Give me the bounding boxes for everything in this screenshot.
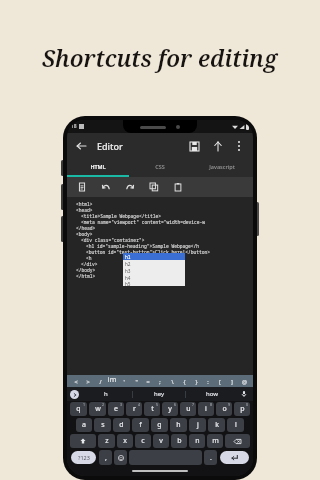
staticText: l [235, 420, 237, 430]
staticText: v [159, 436, 163, 446]
staticText: Shortcuts for editing [42, 42, 278, 73]
button[interactable]: > [82, 375, 94, 387]
button[interactable]: Javascript [191, 158, 253, 175]
button[interactable]: Expand [70, 390, 79, 399]
button[interactable]: < [70, 375, 82, 387]
button[interactable]: q [70, 402, 87, 416]
staticText: <button id="test-button">Click here!</bu… [86, 249, 211, 255]
button[interactable]: ?123 [71, 451, 96, 464]
staticText: <div class="container"> [81, 237, 145, 243]
button[interactable]: hey [133, 387, 185, 401]
staticText: h3 [125, 268, 131, 274]
button[interactable]: ; [154, 375, 166, 387]
staticText: s [101, 420, 105, 430]
button[interactable]: = [142, 375, 154, 387]
button[interactable]: h3 [123, 267, 185, 274]
button[interactable]: { [178, 375, 190, 387]
staticText: </body> [76, 267, 96, 273]
staticText: g [157, 420, 162, 430]
button[interactable]: Shift [70, 434, 96, 448]
staticText: q [76, 404, 81, 414]
button[interactable]: Undo [99, 180, 113, 194]
button[interactable]: h4 [123, 274, 185, 281]
button[interactable]: e [108, 402, 124, 416]
staticText: [ [219, 378, 221, 385]
button[interactable]: Voice input [238, 388, 250, 400]
button[interactable]: how [186, 387, 238, 401]
button[interactable]: k [208, 418, 225, 432]
button[interactable]: a [76, 418, 92, 432]
staticText: 9 [228, 402, 231, 407]
button[interactable]: w [89, 402, 106, 416]
button[interactable]: Redo [123, 180, 137, 194]
staticText: 2 [102, 402, 105, 407]
button[interactable]: Copy [147, 180, 161, 194]
button[interactable]: New file [75, 180, 89, 194]
button[interactable]: Back [73, 138, 89, 154]
button[interactable]: j [189, 418, 206, 432]
button[interactable]: img [106, 375, 118, 387]
staticText: : [207, 378, 209, 385]
staticText: h [176, 420, 181, 430]
button[interactable]: Backspace [225, 434, 250, 448]
button[interactable]: u [180, 402, 196, 416]
button[interactable]: Emoji [114, 450, 127, 465]
button[interactable]: r [126, 402, 142, 416]
staticText: } [195, 378, 198, 385]
button[interactable]: HTML [67, 158, 129, 175]
staticText: f [139, 420, 142, 430]
staticText: 7 [192, 402, 195, 407]
button[interactable]: m [207, 434, 223, 448]
button[interactable]: l [227, 418, 244, 432]
button[interactable]: h1 [123, 253, 185, 260]
button[interactable]: More options [231, 138, 247, 154]
button[interactable]: Upload [209, 137, 227, 155]
button[interactable]: " [130, 375, 142, 387]
button[interactable]: c [135, 434, 151, 448]
button[interactable]: p [234, 402, 250, 416]
button[interactable]: o [216, 402, 232, 416]
staticText: \ [171, 378, 174, 385]
button[interactable]: @ [238, 375, 250, 387]
button[interactable]: d [113, 418, 130, 432]
button[interactable]: h [170, 418, 187, 432]
button[interactable]: . [204, 450, 217, 465]
staticText: n [195, 436, 200, 446]
button[interactable]: s [94, 418, 111, 432]
button[interactable]: \ [166, 375, 178, 387]
button[interactable]: i [198, 402, 214, 416]
button[interactable]: n [189, 434, 205, 448]
button[interactable]: x [117, 434, 133, 448]
button[interactable]: h [79, 387, 132, 401]
staticText: ; [159, 378, 161, 385]
button[interactable]: , [99, 450, 112, 465]
button[interactable]: CSS [129, 158, 191, 175]
button[interactable]: z [98, 434, 115, 448]
button[interactable]: b [171, 434, 187, 448]
staticText: how [206, 390, 218, 398]
staticText: <h1 id="sample-heading">Sample Webpage</… [86, 243, 200, 249]
button[interactable]: : [202, 375, 214, 387]
staticText: img [106, 375, 118, 387]
button[interactable]: v [153, 434, 169, 448]
button[interactable]: g [151, 418, 168, 432]
button[interactable]: Enter [220, 451, 249, 464]
staticText: / [99, 378, 102, 385]
button[interactable]: [ [214, 375, 226, 387]
button[interactable]: f [132, 418, 149, 432]
button[interactable]: / [94, 375, 106, 387]
staticText: u [186, 404, 191, 414]
staticText: <title>Sample Webpage</title> [81, 213, 161, 219]
button[interactable]: h5 [123, 281, 185, 286]
button[interactable]: t [144, 402, 160, 416]
button[interactable]: Space [129, 450, 202, 465]
button[interactable]: } [190, 375, 202, 387]
button[interactable]: y [162, 402, 178, 416]
staticText: x [123, 436, 127, 446]
button[interactable]: ] [226, 375, 238, 387]
button[interactable]: ' [118, 375, 130, 387]
button[interactable]: Paste [171, 180, 185, 194]
staticText: c [141, 436, 145, 446]
button[interactable]: Save [185, 137, 203, 155]
button[interactable]: h2 [123, 260, 185, 267]
